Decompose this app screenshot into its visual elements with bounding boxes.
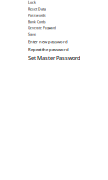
staticText: Passwords — [28, 13, 46, 18]
staticText: Set Master Password — [28, 54, 80, 62]
staticText: Save — [28, 32, 36, 37]
staticText: Repeat the password — [28, 46, 69, 52]
staticText: Reset Data — [28, 7, 46, 11]
staticText: Generate Password — [28, 26, 56, 30]
staticText: Bank Cards — [28, 20, 46, 24]
staticText: Enter new password — [28, 39, 68, 44]
staticText: Lock — [28, 0, 36, 5]
